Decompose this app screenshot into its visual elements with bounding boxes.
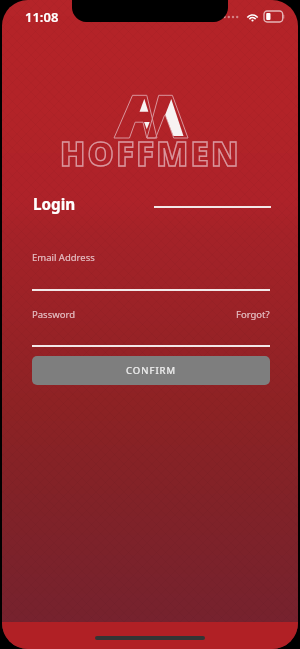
staticText: Email Address — [32, 251, 95, 264]
staticText: CONFIRM — [126, 364, 177, 377]
button[interactable]: Email Address — [32, 251, 270, 293]
staticText: 11:08 — [25, 8, 59, 26]
staticText: Password — [32, 308, 75, 321]
button[interactable]: Login — [33, 192, 271, 216]
staticText: Login — [33, 194, 76, 215]
staticText: HOFFMEN — [60, 131, 241, 176]
button[interactable]: CONFIRM — [32, 356, 270, 385]
button[interactable]: Forgot? — [236, 308, 270, 321]
button[interactable]: Password — [32, 308, 270, 349]
